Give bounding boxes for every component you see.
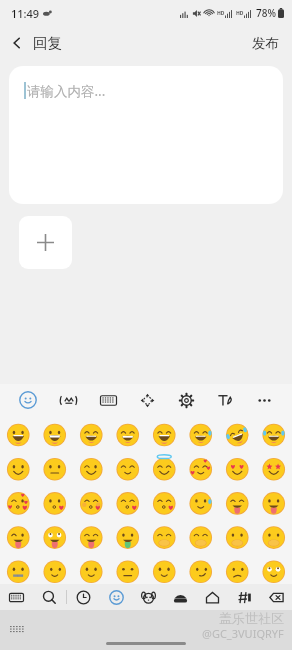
button[interactable]: Backspace [260, 584, 292, 610]
staticText: 回复 [33, 34, 62, 52]
staticText: 11:49 [11, 6, 40, 21]
button[interactable]: 发布 [239, 29, 292, 58]
button[interactable]: Animals [132, 584, 164, 610]
button[interactable]: Back [0, 30, 72, 56]
staticText: HD [236, 10, 244, 17]
button[interactable]: Emoji [8, 384, 48, 416]
button[interactable]: Symbols [228, 584, 260, 610]
button[interactable]: 请输入内容... [9, 66, 283, 204]
other: Hide keyboard [10, 625, 25, 635]
button[interactable]: Search [33, 584, 66, 610]
button[interactable]: Smileys [100, 584, 132, 610]
staticText: 78% [256, 6, 276, 20]
button[interactable]: Resize [128, 384, 167, 416]
button[interactable]: Food [164, 584, 196, 610]
staticText: @GC_3VUIQRYF [202, 626, 284, 641]
staticText: HD [217, 10, 225, 17]
button[interactable]: Handwriting [206, 384, 245, 416]
button[interactable]: Add attachment [19, 216, 72, 269]
button[interactable]: Keyboard [0, 584, 33, 610]
staticText: 盖乐世社区 [219, 610, 284, 626]
button[interactable]: Places [196, 584, 228, 610]
staticText: 发布 [252, 35, 279, 52]
button[interactable]: Settings [167, 384, 206, 416]
staticText: 请输入内容... [27, 82, 106, 100]
button[interactable]: Recent [67, 584, 100, 610]
other: Back [10, 36, 24, 50]
button[interactable]: More [245, 384, 284, 416]
button[interactable]: Keyboard [88, 384, 128, 416]
button[interactable]: Kaomoji [48, 384, 88, 416]
